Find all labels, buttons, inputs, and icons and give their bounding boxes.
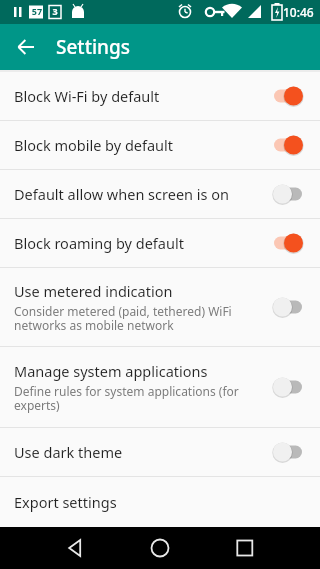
staticText: Default allow when screen is on (14, 184, 230, 204)
staticText: Manage system applications (14, 361, 208, 381)
staticText: Consider metered (paid, tethered) WiFi n… (14, 303, 232, 334)
button[interactable]: Manage system applications (268, 372, 308, 402)
button[interactable]: Use dark theme (268, 437, 308, 467)
staticText: Block roaming by default (14, 233, 184, 253)
staticText: Use dark theme (14, 442, 123, 462)
button[interactable]: Use dark theme (0, 428, 320, 476)
button[interactable]: Block Wi-Fi by default (0, 72, 320, 120)
staticText: 57 (30, 5, 44, 17)
button[interactable]: Block Wi-Fi by default (268, 81, 308, 111)
button[interactable]: Block mobile by default (268, 130, 308, 160)
button[interactable]: Back (10, 31, 42, 63)
staticText: Block mobile by default (14, 135, 174, 155)
button[interactable]: Export settings (0, 477, 320, 527)
button[interactable]: Default allow when screen is on (268, 179, 308, 209)
staticText: 10:46 (283, 4, 314, 20)
staticText: 3 (49, 5, 61, 17)
staticText: Define rules for system applications (fo… (14, 383, 239, 414)
button[interactable]: Block roaming by default (268, 228, 308, 258)
button[interactable]: Block mobile by default (0, 121, 320, 169)
button[interactable]: Block roaming by default (0, 219, 320, 267)
button[interactable]: Use metered indication (0, 268, 320, 346)
button[interactable]: Manage system applications (0, 347, 320, 427)
staticText: Settings (56, 34, 130, 60)
staticText: Use metered indication (14, 281, 173, 301)
button[interactable]: Use metered indication (268, 292, 308, 322)
staticText: Export settings (14, 492, 117, 512)
button[interactable]: Default allow when screen is on (0, 170, 320, 218)
staticText: Block Wi-Fi by default (14, 86, 160, 106)
